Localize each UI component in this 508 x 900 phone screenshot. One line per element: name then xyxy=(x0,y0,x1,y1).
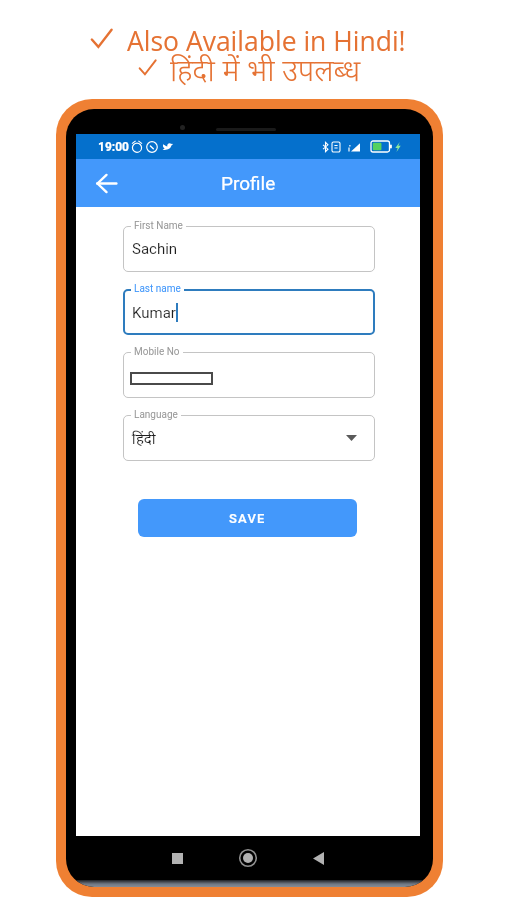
button[interactable]: SAVE xyxy=(138,499,357,537)
button[interactable]: Recents xyxy=(162,836,192,880)
staticText: Kumar xyxy=(132,304,176,322)
staticText: Also Available in Hindi! xyxy=(127,23,406,59)
staticText: Sachin xyxy=(132,240,178,258)
staticText: SAVE xyxy=(229,511,266,526)
button[interactable]: Back xyxy=(86,163,126,203)
button[interactable] xyxy=(123,226,375,272)
button[interactable] xyxy=(123,289,375,335)
staticText: Last name xyxy=(134,283,181,295)
staticText: Language xyxy=(134,409,178,421)
button[interactable] xyxy=(123,352,375,398)
staticText: हिंदी में भी उपलब्ध xyxy=(170,49,361,90)
staticText: हिंदी xyxy=(132,428,156,448)
button[interactable]: Back xyxy=(303,836,333,880)
staticText: First Name xyxy=(134,220,183,232)
button[interactable] xyxy=(123,415,375,461)
staticText: Profile xyxy=(221,172,276,194)
staticText: Mobile No xyxy=(134,346,180,358)
button[interactable]: Home xyxy=(233,836,263,880)
staticText: 19:00 xyxy=(98,140,129,154)
